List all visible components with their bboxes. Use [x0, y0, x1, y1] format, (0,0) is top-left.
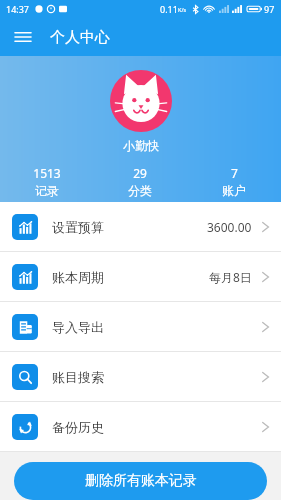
button[interactable]: 备份历史 — [0, 402, 281, 451]
button[interactable]: 29 — [93, 165, 187, 198]
staticText: 账目搜索 — [52, 369, 104, 385]
staticText: 7 — [231, 165, 238, 181]
staticText: 29 — [133, 165, 147, 181]
staticText: 账户 — [222, 183, 246, 198]
staticText: 0.11 — [160, 3, 178, 15]
button[interactable]: 账本周期 — [0, 252, 281, 301]
staticText: 记录 — [35, 183, 59, 198]
button[interactable]: 7 — [187, 165, 281, 198]
staticText: 个人中心 — [50, 28, 110, 47]
button[interactable]: 导入导出 — [0, 302, 281, 351]
staticText: 97 — [264, 3, 275, 15]
staticText: 每月8日 — [209, 269, 252, 285]
button[interactable]: Avatar — [110, 70, 172, 132]
button[interactable]: 1513 — [0, 165, 93, 198]
button[interactable]: 设置预算 — [0, 202, 281, 251]
button[interactable]: 删除所有账本记录 — [14, 462, 267, 500]
staticText: 导入导出 — [52, 319, 104, 335]
staticText: 14:37 — [6, 3, 30, 15]
staticText: 删除所有账本记录 — [85, 472, 197, 490]
staticText: 小勤快 — [123, 138, 159, 153]
button[interactable]: Menu — [8, 22, 38, 52]
staticText: 1513 — [33, 165, 61, 181]
staticText: 3600.00 — [207, 219, 252, 235]
button[interactable]: 账目搜索 — [0, 352, 281, 401]
staticText: 设置预算 — [52, 219, 104, 235]
staticText: 备份历史 — [52, 419, 104, 435]
staticText: K/s — [178, 6, 187, 13]
staticText: 分类 — [128, 183, 152, 198]
staticText: 账本周期 — [52, 269, 104, 285]
